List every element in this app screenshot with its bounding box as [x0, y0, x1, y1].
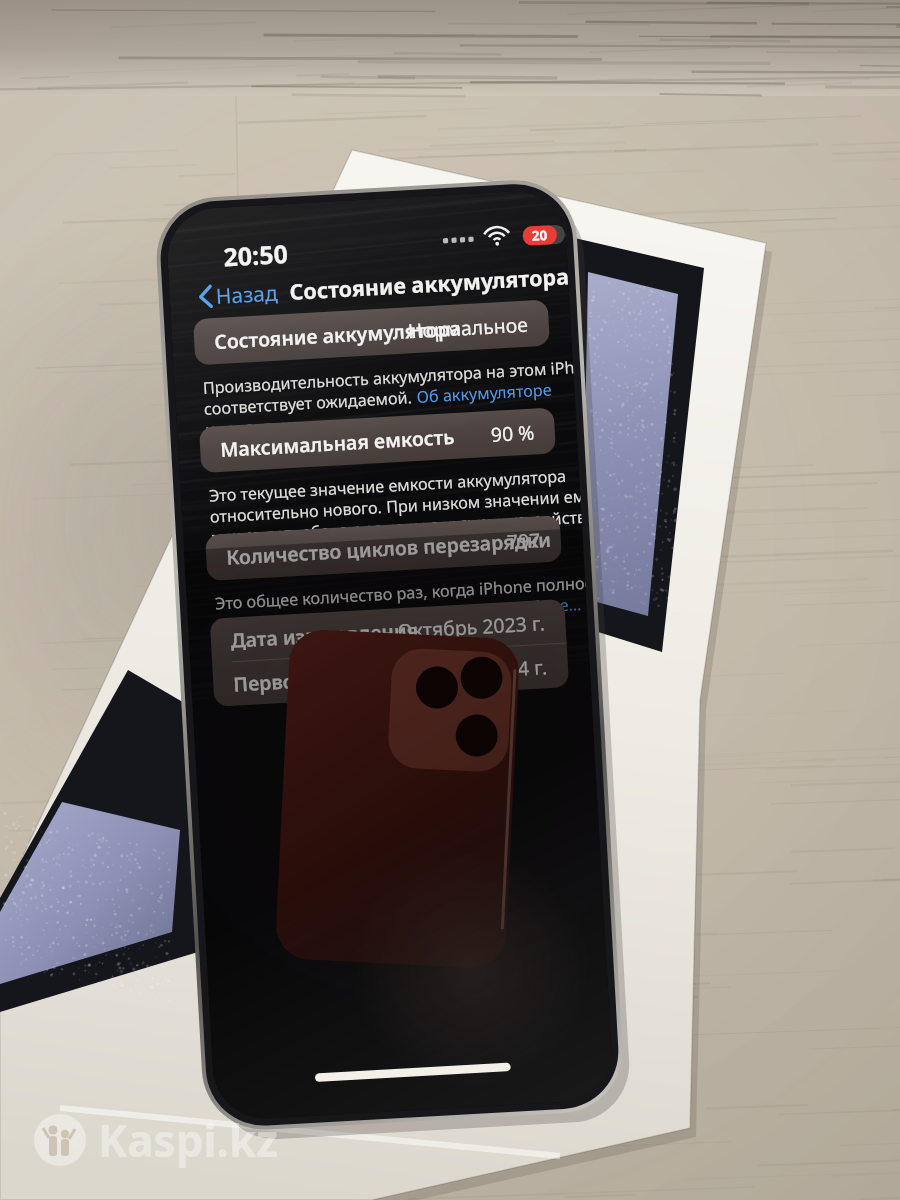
button[interactable]: iPhone battery health screen photo	[0, 0, 900, 1200]
